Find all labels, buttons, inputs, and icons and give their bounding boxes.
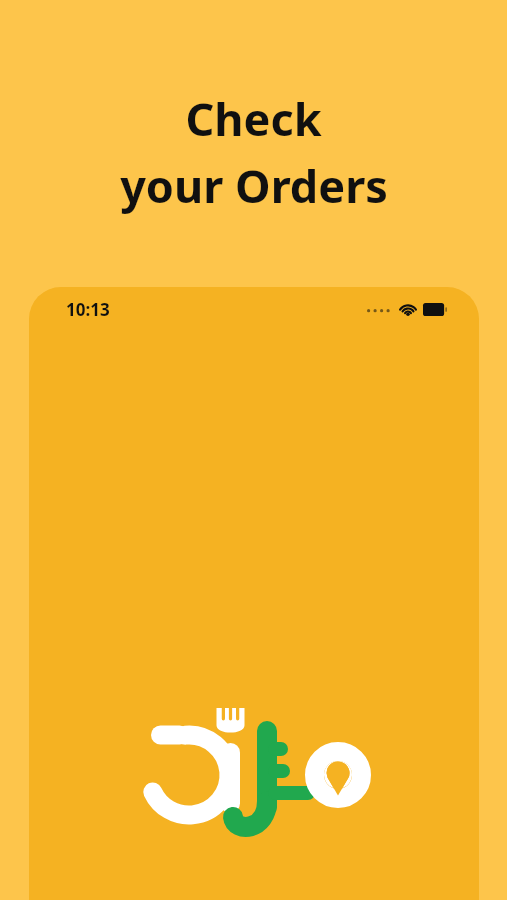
- staticText: 10:13: [66, 298, 110, 321]
- staticText: Check: [185, 88, 322, 149]
- staticText: your Orders: [120, 155, 388, 216]
- button[interactable]: Dilo logo: [143, 705, 369, 845]
